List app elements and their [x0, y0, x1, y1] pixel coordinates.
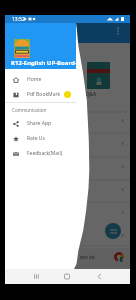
other: More options	[116, 27, 120, 35]
staticText: 13:52	[12, 16, 25, 23]
staticText: p Q&A	[81, 91, 97, 98]
staticText: Rate Us	[27, 135, 45, 142]
staticText: Feedback(Mail)	[27, 150, 63, 157]
staticText: K12-English UP-Board-Sol	[11, 59, 82, 75]
button[interactable]: Sync	[105, 223, 121, 239]
button[interactable]: Share App	[5, 116, 76, 131]
staticText: test ad	[80, 254, 95, 260]
button[interactable]: test ad	[5, 248, 130, 269]
button[interactable]	[87, 62, 110, 89]
button[interactable]: Home	[5, 72, 76, 87]
staticText: Home	[27, 76, 42, 83]
button[interactable]: Rate Us	[5, 131, 76, 146]
button[interactable]: Pdf BookMark	[5, 87, 76, 102]
button[interactable]: Feedback(Mail)	[5, 146, 76, 161]
staticText: Communication	[12, 107, 47, 113]
button[interactable]: K12-English UP-Board-Sol	[5, 23, 76, 69]
button[interactable]: More options	[5, 15, 130, 43]
staticText: Share App	[27, 120, 52, 127]
staticText: Pdf BookMark	[27, 91, 61, 98]
